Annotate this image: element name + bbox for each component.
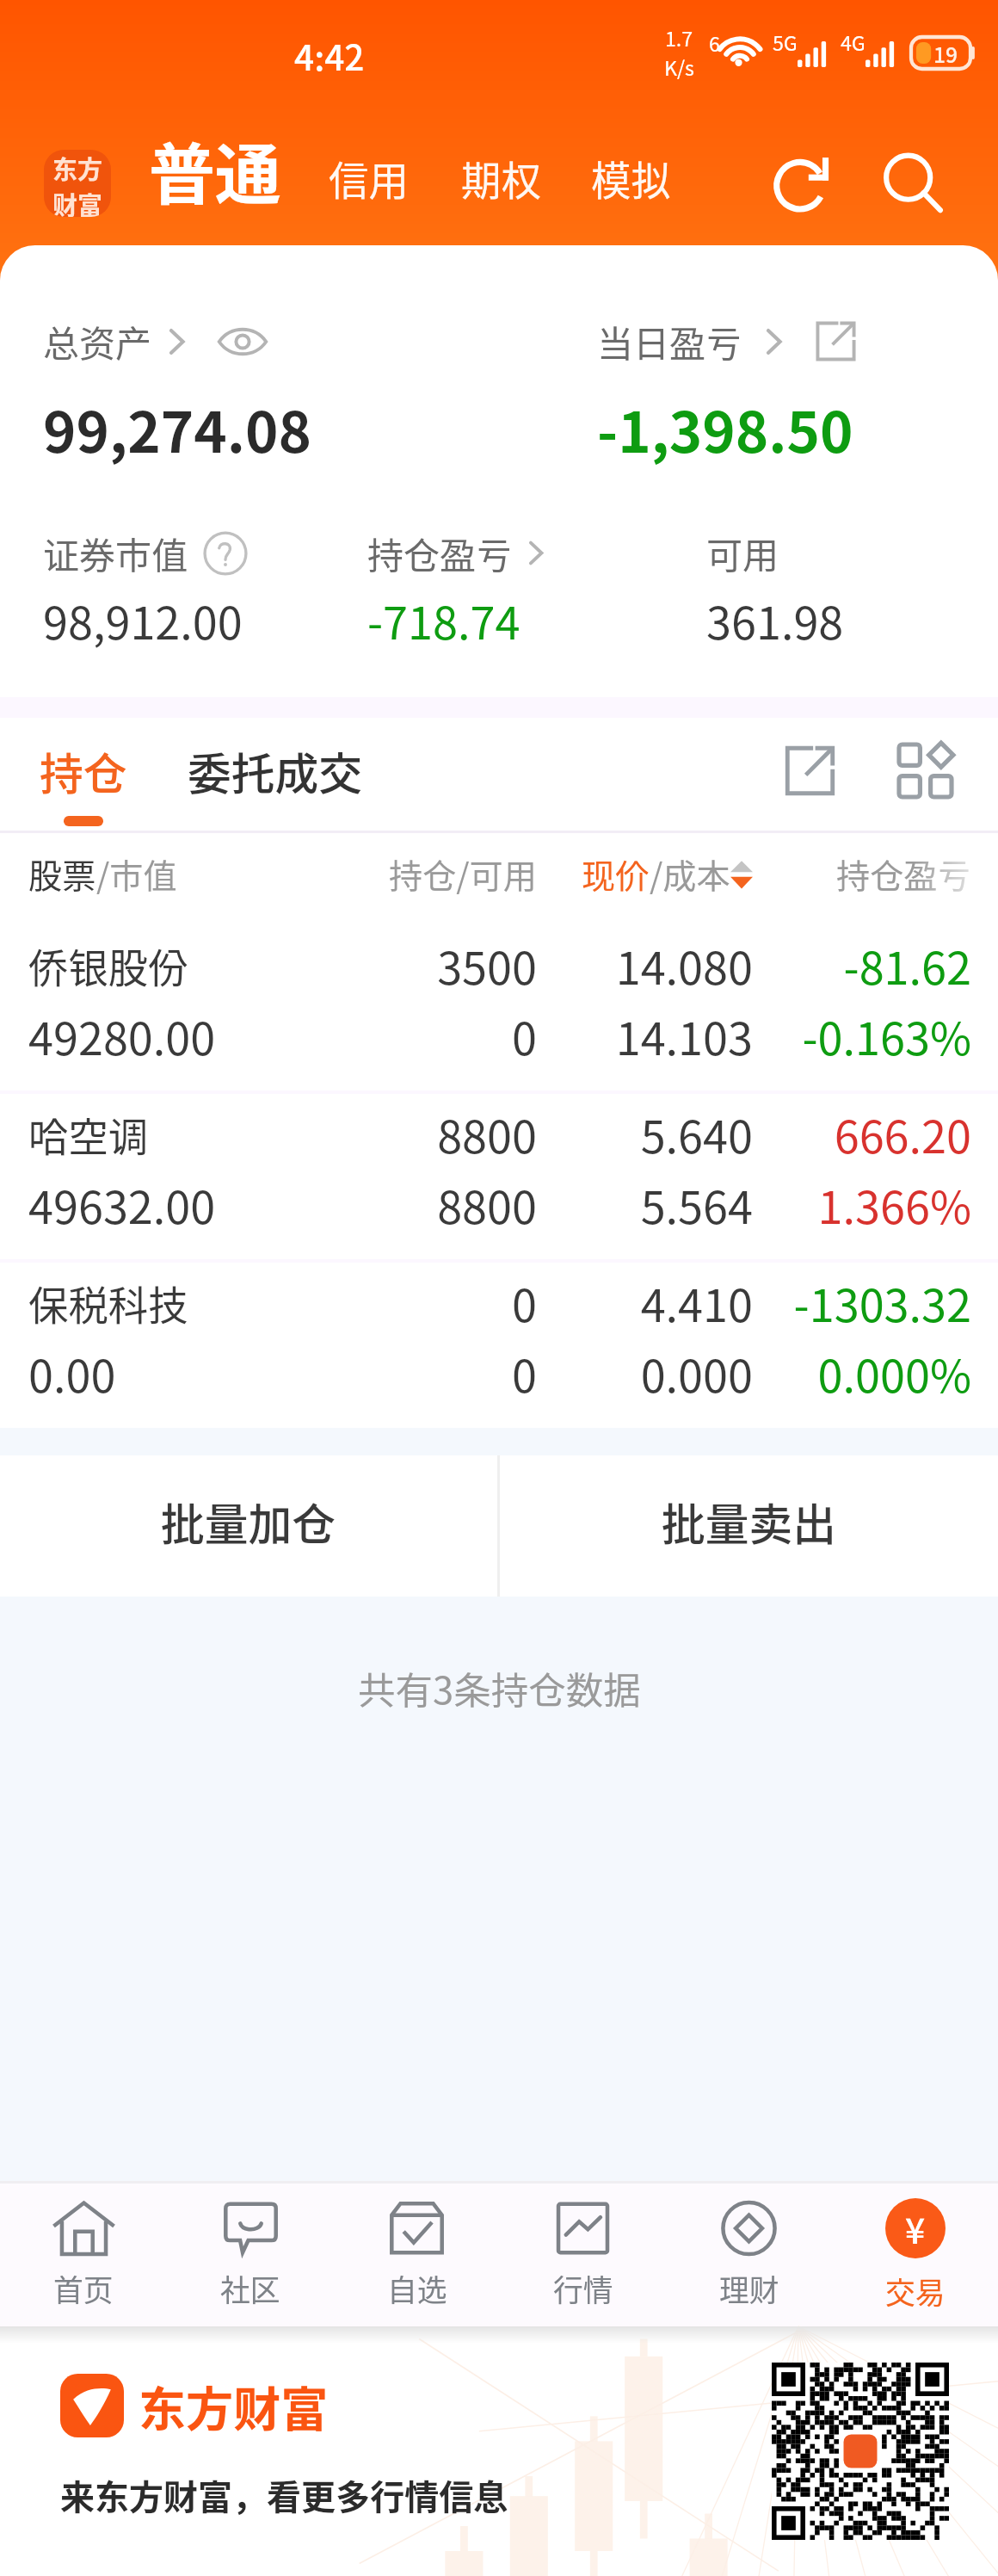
staticText: -718.74 xyxy=(367,587,521,652)
staticText: 来东方财富，看更多行情信息 xyxy=(60,2470,508,2520)
staticText: 98,912.00 xyxy=(43,587,243,652)
button[interactable]: 总资产 xyxy=(43,315,268,368)
staticText: 证券市值 xyxy=(43,527,188,579)
button[interactable]: 持仓盈亏 xyxy=(367,527,551,579)
button[interactable]: Search xyxy=(863,133,963,233)
staticText: 99,274.08 xyxy=(43,387,311,468)
staticText: 0.000 xyxy=(537,1340,753,1405)
staticText: 交易 xyxy=(885,2270,946,2313)
button[interactable]: Securities market value info xyxy=(203,531,248,576)
staticText: 19 xyxy=(933,38,958,69)
staticText: 理财 xyxy=(719,2267,779,2310)
staticText: -0.163% xyxy=(753,1003,971,1068)
staticText: 8800 xyxy=(28,1171,537,1237)
staticText: 首页 xyxy=(53,2267,114,2310)
staticText: 1.366% xyxy=(753,1171,971,1237)
button[interactable]: 现价 xyxy=(537,849,753,899)
staticText: 东方财富 xyxy=(139,2371,329,2440)
staticText: 持仓 xyxy=(40,739,127,802)
staticText: 361.98 xyxy=(706,587,844,652)
staticText: 4.410 xyxy=(537,1269,753,1335)
button[interactable]: 批量加仓 xyxy=(0,1455,497,1597)
button[interactable]: 理财 xyxy=(666,2184,832,2326)
staticText: 行情 xyxy=(553,2267,613,2310)
button[interactable]: 社区 xyxy=(167,2184,334,2326)
button[interactable]: More options xyxy=(883,728,968,813)
staticText: 共有3条持仓数据 xyxy=(358,1661,641,1715)
staticText: 14.080 xyxy=(537,932,753,998)
staticText: 期权 xyxy=(461,149,541,207)
button[interactable]: East Money xyxy=(44,150,111,217)
staticText: 当日盈亏 xyxy=(597,315,742,368)
button[interactable]: Toggle amount visibility xyxy=(218,325,268,358)
staticText: 侨银股份 xyxy=(28,936,188,994)
staticText: ¥ xyxy=(905,2203,926,2254)
staticText: 0.000% xyxy=(753,1340,971,1405)
button[interactable]: 持仓 xyxy=(40,718,127,833)
staticText: 东方 xyxy=(52,150,103,186)
staticText: 现价 xyxy=(582,849,650,899)
staticText: 0 xyxy=(28,1003,537,1068)
staticText: 6 xyxy=(709,28,720,58)
button[interactable]: 自选 xyxy=(334,2184,500,2326)
staticText: 666.20 xyxy=(753,1101,971,1166)
staticText: 4:42 xyxy=(294,30,365,81)
staticText: 模拟 xyxy=(591,149,671,207)
staticText: 总资产 xyxy=(43,315,152,368)
button[interactable]: 普通 xyxy=(149,122,281,218)
button[interactable]: Open in new window xyxy=(767,728,853,813)
button[interactable]: Refresh xyxy=(753,133,853,233)
staticText: 5.640 xyxy=(537,1101,753,1166)
button[interactable]: 侨银股份 xyxy=(0,925,998,1090)
staticText: 信用 xyxy=(329,149,409,207)
staticText: -81.62 xyxy=(753,932,971,998)
button[interactable]: 当日盈亏 xyxy=(597,315,857,368)
staticText: 49280.00 xyxy=(28,1003,216,1068)
button[interactable]: 期权 xyxy=(461,141,541,199)
button[interactable]: 批量卖出 xyxy=(500,1455,998,1597)
staticText: 5G xyxy=(773,28,798,57)
button[interactable]: 哈空调 xyxy=(0,1094,998,1259)
staticText: 普通 xyxy=(149,122,281,218)
staticText: 8800 xyxy=(28,1101,537,1166)
staticText: 4G xyxy=(841,28,866,57)
staticText: 持仓盈亏 xyxy=(836,849,971,899)
staticText: 社区 xyxy=(220,2267,280,2310)
staticText: 0.00 xyxy=(28,1340,116,1405)
staticText: 49632.00 xyxy=(28,1171,216,1237)
staticText: 持仓盈亏 xyxy=(367,527,513,579)
staticText: 委托成交 xyxy=(188,739,363,802)
staticText: 财富 xyxy=(52,186,103,217)
staticText: 批量卖出 xyxy=(662,1490,837,1553)
button[interactable]: 保税科技 xyxy=(0,1263,998,1428)
staticText: 3500 xyxy=(28,932,537,998)
button[interactable]: 委托成交 xyxy=(188,718,363,833)
staticText: 持仓/可用 xyxy=(389,849,537,899)
button[interactable]: 行情 xyxy=(500,2184,666,2326)
staticText: 哈空调 xyxy=(28,1105,149,1163)
staticText: K/s xyxy=(664,53,694,82)
staticText: 保税科技 xyxy=(28,1274,188,1331)
staticText: 股票 xyxy=(28,849,96,899)
button[interactable]: 首页 xyxy=(0,2184,167,2326)
staticText: -1,398.50 xyxy=(597,387,853,468)
staticText: 0 xyxy=(28,1340,537,1405)
staticText: 1.7 xyxy=(665,23,693,53)
button[interactable]: 模拟 xyxy=(591,141,671,199)
button[interactable]: ¥ xyxy=(832,2184,998,2326)
staticText: -1303.32 xyxy=(753,1269,971,1335)
button[interactable]: 信用 xyxy=(329,141,409,199)
staticText: 可用 xyxy=(706,527,779,579)
staticText: 批量加仓 xyxy=(161,1490,336,1553)
staticText: 14.103 xyxy=(537,1003,753,1068)
staticText: 0 xyxy=(28,1269,537,1335)
staticText: /市值 xyxy=(96,849,177,899)
staticText: /成本 xyxy=(650,849,730,899)
staticText: 5.564 xyxy=(537,1171,753,1237)
staticText: 自选 xyxy=(387,2267,447,2310)
